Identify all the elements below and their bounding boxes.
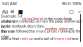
staticText: in the main body <box>43 16 72 21</box>
staticText: Example 7-4 shows a <box>1 13 22 24</box>
staticText: string literal <box>22 16 43 21</box>
staticText: Aa ≡ ■ <box>2 8 23 15</box>
staticText: this row followed by more prose running … <box>1 28 81 39</box>
staticText: red run <box>20 36 33 41</box>
staticText: Wi-Fi 100% <box>62 1 81 6</box>
staticText: text <box>71 36 78 41</box>
staticText: more red <box>54 36 71 41</box>
staticText: with a final <box>1 36 20 41</box>
staticText: on <box>68 26 73 31</box>
staticText: and a tail of <box>33 36 54 41</box>
staticText: as the textbook describes, there is <box>1 23 45 34</box>
staticText: so the text continues across the page an… <box>1 18 82 29</box>
staticText: 9:41 AM <box>2 1 17 6</box>
staticText: ○ ⌕ <box>69 8 81 15</box>
staticText: another token <box>45 26 68 31</box>
